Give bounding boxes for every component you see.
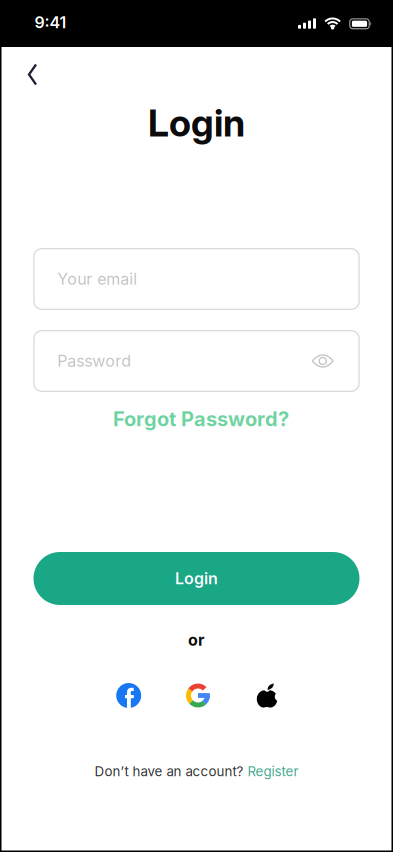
staticText: Register (247, 764, 298, 779)
button[interactable]: Back (19, 56, 46, 92)
staticText: Your email (57, 270, 137, 288)
staticText: or (188, 631, 205, 649)
staticText: Forgot Password? (113, 407, 289, 431)
staticText: 9:41 (34, 13, 66, 32)
button[interactable]: Continue with Apple (255, 683, 279, 708)
button[interactable]: Login (33, 552, 359, 605)
button[interactable]: Continue with Facebook (116, 683, 141, 708)
button[interactable]: Show password (306, 348, 339, 373)
button[interactable]: Continue with Google (186, 683, 210, 707)
staticText: Login (148, 101, 245, 145)
staticText: Password (57, 352, 131, 370)
button[interactable]: Register (247, 764, 298, 779)
staticText: Don’t have an account? (94, 764, 243, 779)
staticText: Login (175, 569, 218, 588)
button[interactable]: Forgot Password? (113, 407, 289, 431)
